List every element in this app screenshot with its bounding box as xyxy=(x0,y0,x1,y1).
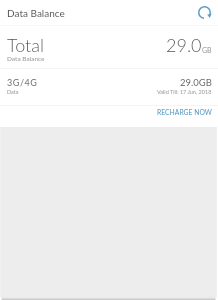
staticText: Data Balance xyxy=(7,55,45,63)
staticText: RECHARGE NOW xyxy=(157,108,212,116)
staticText: Total xyxy=(7,34,44,56)
button[interactable]: Refresh xyxy=(193,1,215,23)
staticText: 29.0 xyxy=(166,34,202,56)
staticText: Valid Till: 17 Jun, 2018 xyxy=(157,89,212,96)
staticText: 29.0GB xyxy=(180,77,212,88)
staticText: 3G/4G xyxy=(7,77,38,88)
staticText: Data Balance xyxy=(7,7,65,19)
staticText: GB xyxy=(202,46,212,54)
staticText: Data xyxy=(7,89,19,96)
button[interactable]: RECHARGE NOW xyxy=(149,106,218,122)
